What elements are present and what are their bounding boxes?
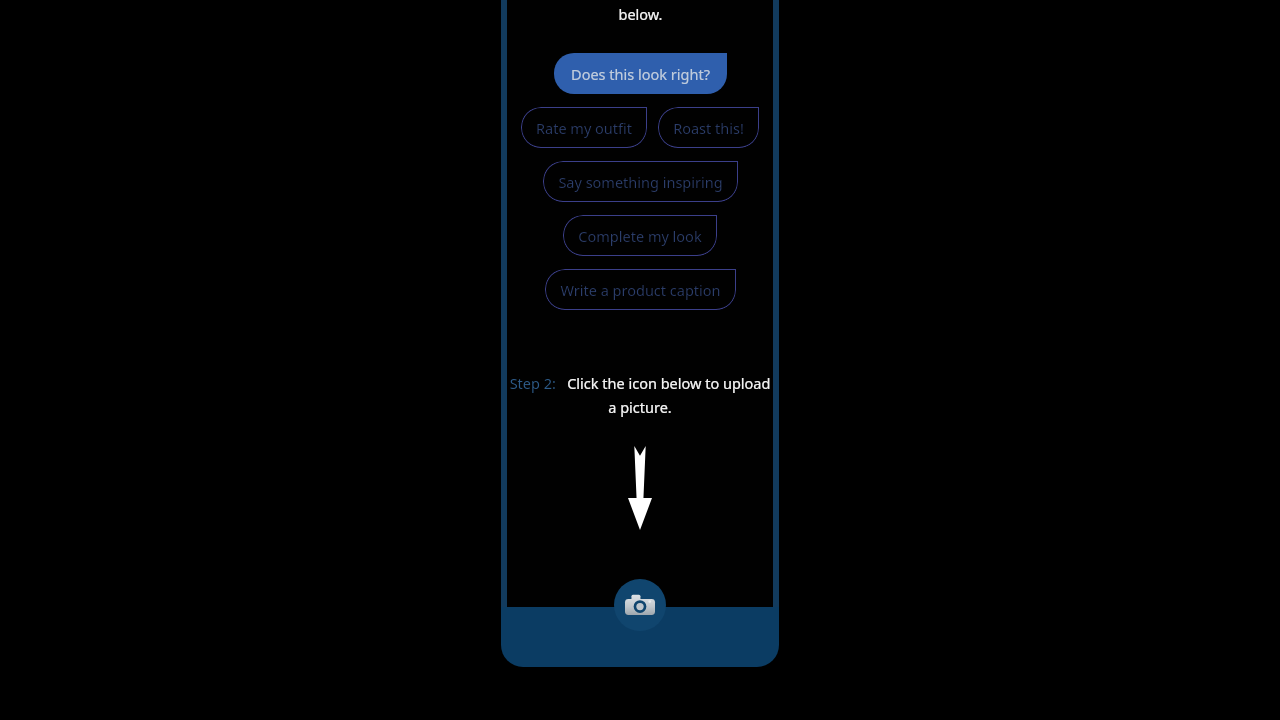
button[interactable]: Does this look right? bbox=[554, 53, 727, 94]
staticText: Rate my outfit bbox=[536, 118, 632, 138]
button[interactable]: Say something inspiring bbox=[543, 161, 738, 202]
button[interactable]: Rate my outfit bbox=[521, 107, 647, 148]
staticText: Step 2: Click the icon below to upload a… bbox=[509, 373, 771, 417]
staticText: Say something inspiring bbox=[558, 172, 723, 192]
button[interactable]: Complete my look bbox=[563, 215, 717, 256]
staticText: Write a product caption bbox=[560, 280, 721, 300]
staticText: Complete my look bbox=[578, 226, 702, 246]
staticText: below. bbox=[618, 4, 663, 24]
button[interactable]: Roast this! bbox=[658, 107, 759, 148]
button[interactable]: Upload a picture bbox=[614, 579, 666, 631]
staticText: Roast this! bbox=[673, 118, 744, 138]
staticText: Does this look right? bbox=[571, 64, 710, 84]
button[interactable]: Write a product caption bbox=[545, 269, 736, 310]
